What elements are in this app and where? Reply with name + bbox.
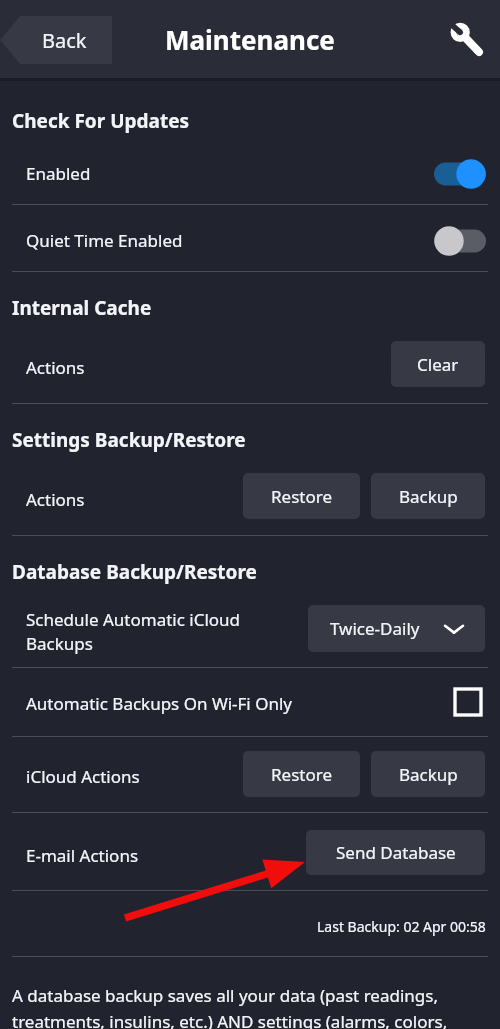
staticText: Schedule Automatic iCloud Backups <box>26 608 241 655</box>
staticText: Maintenance <box>165 22 335 57</box>
staticText: Database Backup/Restore <box>12 559 257 585</box>
staticText: Actions <box>26 356 85 379</box>
staticText: Restore <box>271 763 332 786</box>
staticText: Send Database <box>336 841 456 864</box>
staticText: Automatic Backups On Wi-Fi Only <box>26 692 293 715</box>
staticText: E-mail Actions <box>26 844 139 867</box>
staticText: Actions <box>26 488 85 511</box>
button[interactable]: Settings <box>447 20 487 60</box>
button[interactable]: Send Database <box>306 830 485 875</box>
button[interactable]: Twice-Daily <box>308 605 485 652</box>
staticText: Clear <box>417 353 459 376</box>
staticText: Backup <box>399 485 458 508</box>
button[interactable]: Restore <box>243 473 360 519</box>
staticText: Back <box>42 27 87 54</box>
button[interactable]: Backup <box>371 473 485 519</box>
button[interactable]: Toggle off <box>434 226 486 256</box>
staticText: A database backup saves all your data (p… <box>12 984 492 1029</box>
button[interactable]: Restore <box>243 751 360 797</box>
staticText: Twice-Daily <box>330 617 420 640</box>
button[interactable]: Automatic Backups On Wi-Fi Only checkbox <box>455 689 481 715</box>
staticText: Quiet Time Enabled <box>26 229 183 252</box>
staticText: Settings Backup/Restore <box>12 427 246 453</box>
staticText: Enabled <box>26 162 91 185</box>
staticText: Last Backup: 02 Apr 00:58 <box>317 917 486 936</box>
staticText: Check For Updates <box>12 108 190 134</box>
staticText: Backup <box>399 763 458 786</box>
staticText: Internal Cache <box>12 295 152 321</box>
staticText: Restore <box>271 485 332 508</box>
button[interactable]: Back <box>0 16 112 64</box>
button[interactable]: Backup <box>371 751 485 797</box>
button[interactable]: Clear <box>391 341 485 387</box>
button[interactable]: Toggle on <box>434 159 486 189</box>
staticText: iCloud Actions <box>26 765 140 788</box>
